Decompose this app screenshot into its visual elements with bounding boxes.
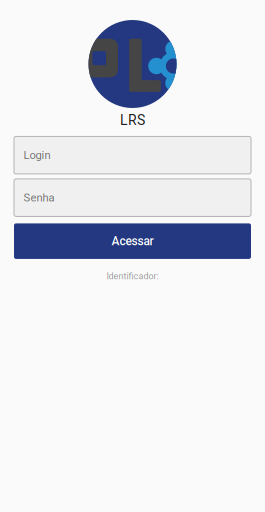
staticText: Identificador: — [106, 271, 158, 281]
staticText: Senha — [23, 191, 54, 204]
staticText: LRS — [120, 112, 145, 128]
button[interactable]: Acessar — [14, 223, 251, 259]
staticText: Login — [23, 149, 50, 162]
staticText: Acessar — [111, 234, 153, 248]
